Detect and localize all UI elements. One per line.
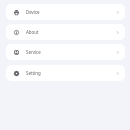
other: About — [14, 30, 19, 35]
staticText: About — [26, 29, 39, 35]
other: Service — [14, 50, 19, 55]
staticText: Service — [26, 49, 41, 55]
button[interactable]: About — [6, 24, 125, 40]
button[interactable]: Setting — [6, 65, 125, 81]
staticText: Device — [26, 9, 40, 15]
button[interactable]: Service — [6, 44, 125, 60]
button[interactable]: Device — [6, 4, 125, 20]
other: Setting — [14, 71, 19, 76]
staticText: Setting — [26, 70, 41, 76]
other: Device — [14, 10, 19, 15]
